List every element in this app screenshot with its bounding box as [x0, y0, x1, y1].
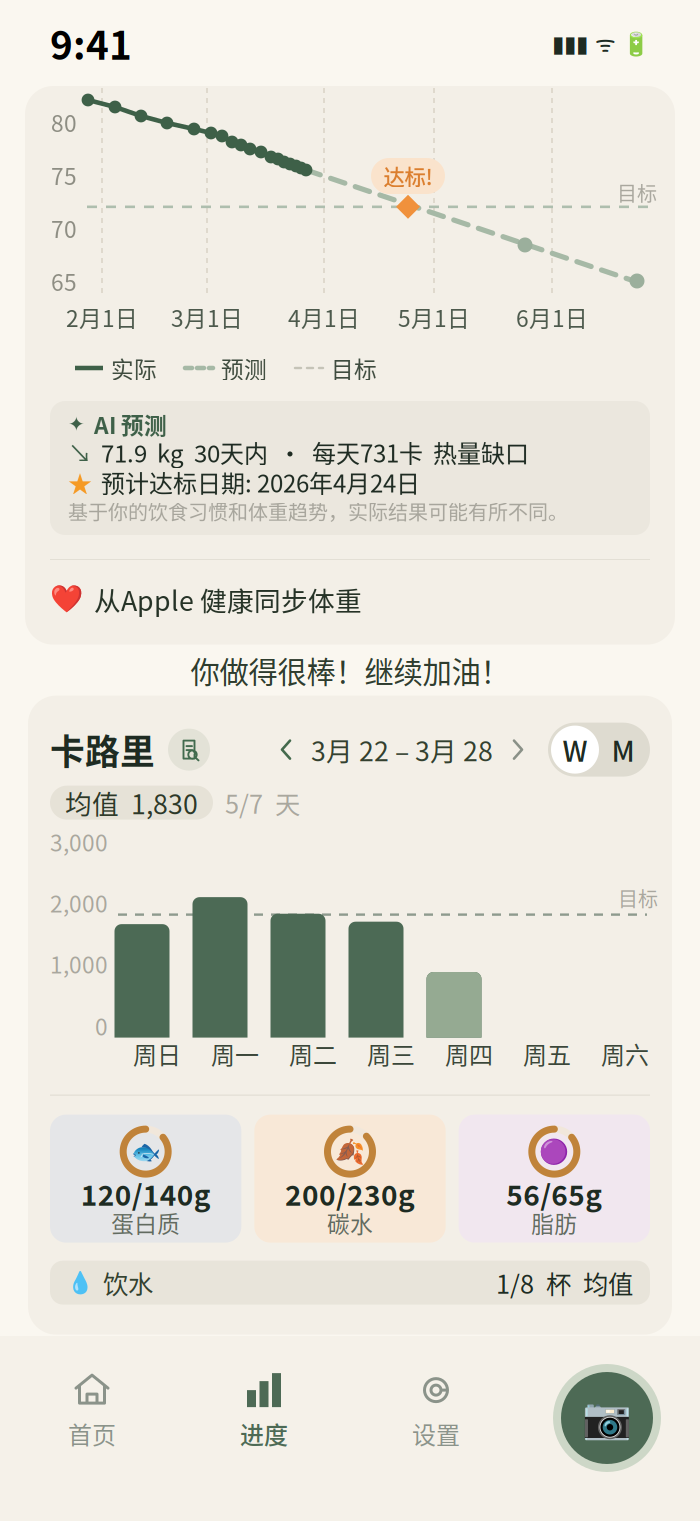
staticText: 65 [51, 265, 77, 297]
staticText: 2,000 [50, 886, 108, 919]
staticText: 200/230g [285, 1173, 415, 1214]
button[interactable]: M [599, 726, 647, 774]
staticText: 周四 [445, 1036, 493, 1071]
staticText: 周日 [133, 1036, 181, 1071]
staticText: 🍂 [335, 1138, 365, 1166]
button[interactable]: 日志 [168, 729, 210, 771]
staticText: 🐟 [131, 1138, 161, 1166]
button[interactable]: 上一周 [272, 729, 302, 771]
staticText: 达标! [383, 161, 432, 191]
staticText: ✦ [68, 412, 85, 436]
staticText: 蛋白质 [111, 1206, 180, 1239]
staticText: 4月1日 [288, 301, 360, 333]
staticText: 5/7 天 [225, 784, 300, 821]
staticText: 💧 [67, 1270, 94, 1295]
staticText: 进度 [240, 1416, 288, 1451]
staticText: 实际 [111, 352, 157, 384]
staticText: 卡路里 [50, 724, 155, 775]
staticText: 碳水 [327, 1206, 373, 1239]
staticText: 预测 [221, 352, 267, 384]
staticText: 周六 [601, 1036, 649, 1071]
staticText: 周五 [523, 1036, 571, 1071]
staticText: 70 [51, 212, 77, 244]
staticText: 6月1日 [516, 301, 588, 333]
staticText: 2月1日 [66, 301, 138, 333]
staticText: 🟣 [539, 1138, 569, 1166]
staticText: 设置 [412, 1416, 460, 1451]
staticText: 80 [51, 106, 77, 138]
staticText: 120/140g [81, 1173, 211, 1214]
staticText: 9:41 [50, 15, 132, 71]
staticText: 3月1日 [171, 301, 243, 333]
staticText: 目标 [331, 352, 377, 384]
staticText: 你做得很棒！继续加油！ [190, 649, 509, 691]
button[interactable]: 首页 [6, 1374, 178, 1450]
staticText: ▮▮▮ ᯤ 🔋 [552, 28, 650, 58]
staticText: 脂肪 [531, 1206, 577, 1239]
staticText: 56/65g [506, 1173, 602, 1214]
staticText: 5月1日 [398, 301, 470, 333]
button[interactable]: 拍照 [553, 1364, 661, 1472]
staticText: 目标 [618, 884, 658, 913]
staticText: 目标 [617, 178, 657, 207]
staticText: 基于你的饮食习惯和体重趋势，实际结果可能有所不同。 [68, 496, 568, 525]
staticText: 饮水 [103, 1264, 153, 1301]
staticText: 3月 22 – 3月 28 [311, 730, 493, 769]
button[interactable]: 设置 [350, 1374, 522, 1450]
staticText: 预计达标日期: 2026年4月24日 [101, 465, 420, 499]
staticText: W [562, 729, 587, 770]
staticText: 周二 [289, 1036, 337, 1071]
staticText: AI 预测 [94, 408, 167, 440]
button[interactable]: W [551, 726, 599, 774]
staticText: 均值 1,830 [65, 783, 198, 822]
staticText: 1/8 杯 均值 [496, 1264, 633, 1301]
staticText: 周三 [367, 1036, 415, 1071]
staticText: ★ [68, 465, 92, 499]
staticText: M [611, 729, 634, 770]
staticText: ❤️ [50, 584, 83, 615]
staticText: 3,000 [50, 825, 108, 858]
button[interactable]: 下一周 [502, 729, 532, 771]
staticText: ↘ [68, 435, 92, 469]
staticText: 75 [51, 159, 77, 191]
staticText: 首页 [68, 1416, 116, 1451]
staticText: 0 [95, 1009, 108, 1042]
staticText: 从Apple 健康同步体重 [94, 580, 362, 619]
staticText: 📷 [582, 1395, 632, 1441]
staticText: 71.9 kg 30天内 · 每天731卡 热量缺口 [101, 435, 529, 469]
staticText: 1,000 [50, 947, 108, 980]
button[interactable]: 进度 [178, 1374, 350, 1450]
staticText: 周一 [211, 1036, 259, 1071]
